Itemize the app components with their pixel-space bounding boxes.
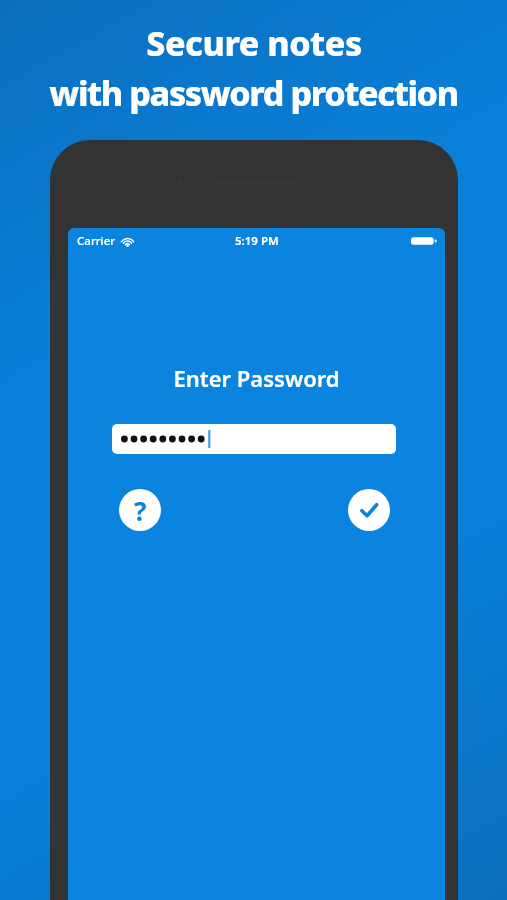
staticText: ? — [134, 493, 147, 528]
button[interactable]: Confirm password — [348, 489, 390, 531]
staticText: Secure notes — [146, 20, 362, 66]
staticText: with password protection — [49, 70, 458, 116]
button[interactable]: Help — [119, 489, 161, 531]
button[interactable] — [112, 424, 396, 454]
staticText: 5:19 PM — [235, 233, 279, 249]
staticText: Enter Password — [173, 363, 340, 393]
staticText: Carrier — [77, 233, 116, 249]
